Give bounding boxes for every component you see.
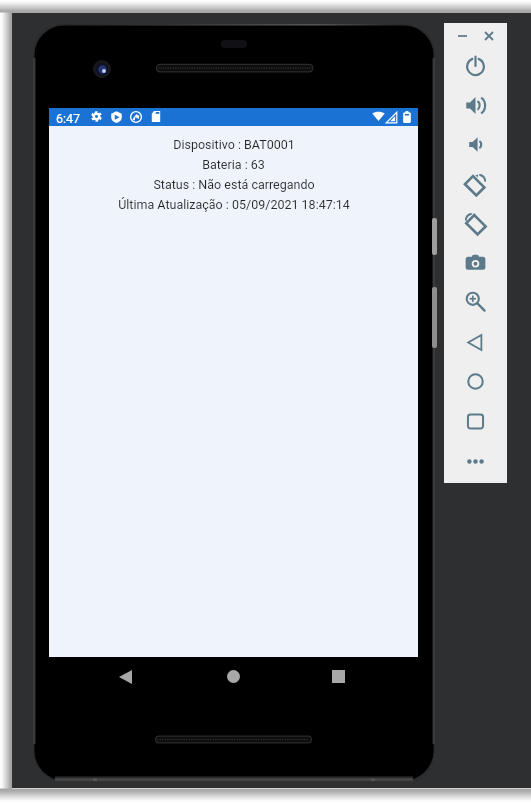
button[interactable]: Minimize [452,26,472,46]
button[interactable]: Volume up [461,91,489,119]
staticText: Status : Não está carregando [153,177,315,192]
button[interactable]: Zoom in [461,287,489,315]
button[interactable]: Rotate left [461,170,489,198]
button[interactable]: Screenshot [461,248,489,276]
button[interactable]: Close [479,26,499,46]
staticText: Bateria : 63 [202,157,265,172]
staticText: Última Atualização : 05/09/2021 18:47:14 [118,197,350,212]
button[interactable]: Back [461,328,489,356]
button[interactable]: Power [461,51,489,79]
button[interactable]: More options [461,447,489,475]
button[interactable]: Rotate right [461,209,489,237]
button[interactable]: Back [107,658,144,695]
staticText: 6:47 [56,111,81,126]
button[interactable]: Volume down [461,130,489,158]
button[interactable]: Recent apps [320,658,357,695]
button[interactable]: Home [215,658,252,695]
button[interactable]: Home [461,367,489,395]
staticText: Dispositivo : BAT0001 [173,137,295,152]
button[interactable]: Overview [461,407,489,435]
